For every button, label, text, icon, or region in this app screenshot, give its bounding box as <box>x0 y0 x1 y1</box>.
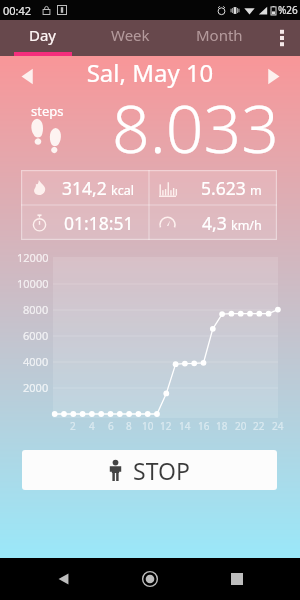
button[interactable]: Back <box>39 558 87 600</box>
staticText: Day <box>29 25 57 45</box>
button[interactable]: 01:18:51 <box>21 205 149 240</box>
staticText: 8 <box>126 419 132 433</box>
staticText: Month <box>196 25 243 45</box>
staticText: Sal, May 10 <box>54 56 246 89</box>
staticText: 16 <box>198 419 210 433</box>
staticText: 8.033 <box>112 82 279 156</box>
staticText: 2 <box>70 419 76 433</box>
staticText: m <box>250 182 262 199</box>
staticText: km/h <box>231 217 262 234</box>
staticText: steps <box>31 102 64 120</box>
staticText: kcal <box>111 182 134 199</box>
button[interactable]: 314,2 <box>21 170 149 205</box>
staticText: 314,2 <box>62 176 107 200</box>
button[interactable]: Previous day <box>0 56 54 96</box>
button[interactable]: STOP <box>22 450 277 490</box>
staticText: %26 <box>278 3 298 17</box>
staticText: 12000 <box>17 250 49 265</box>
staticText: 20 <box>235 419 247 433</box>
button[interactable]: 4,3 <box>149 205 277 240</box>
staticText: 4 <box>89 419 95 433</box>
staticText: 10 <box>142 419 154 433</box>
button[interactable]: 5.623 <box>149 170 277 205</box>
staticText: 14 <box>179 419 191 433</box>
button[interactable]: Home <box>126 558 174 600</box>
staticText: 4,3 <box>202 211 227 235</box>
staticText: 8000 <box>23 302 49 317</box>
button[interactable]: Month <box>175 20 264 56</box>
button[interactable]: Next day <box>246 56 300 96</box>
staticText: 18 <box>216 419 228 433</box>
staticText: Week <box>111 25 150 45</box>
button[interactable]: Week <box>86 20 175 56</box>
staticText: 01:18:51 <box>64 211 134 235</box>
staticText: 12 <box>160 419 172 433</box>
staticText: 6000 <box>23 328 49 343</box>
staticText: 10000 <box>17 276 49 291</box>
staticText: 4000 <box>23 354 49 369</box>
button[interactable]: Day <box>0 20 86 56</box>
staticText: STOP <box>133 455 190 486</box>
staticText: 00:42 <box>3 3 32 18</box>
staticText: 5.623 <box>201 176 246 200</box>
staticText: 6 <box>108 419 114 433</box>
staticText: 22 <box>253 419 265 433</box>
button[interactable]: Recent apps <box>213 558 261 600</box>
staticText: 2000 <box>23 380 49 395</box>
button[interactable]: More options <box>264 20 300 56</box>
staticText: 24 <box>272 419 284 433</box>
